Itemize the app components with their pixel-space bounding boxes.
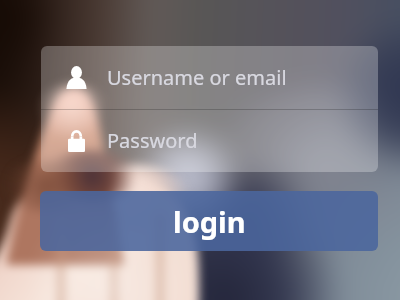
button[interactable]: Password: [41, 109, 378, 172]
button[interactable]: Username or email: [41, 46, 378, 109]
staticText: Password: [107, 127, 198, 154]
staticText: login: [173, 202, 246, 241]
button[interactable]: login: [40, 191, 378, 251]
staticText: Username or email: [107, 64, 287, 91]
